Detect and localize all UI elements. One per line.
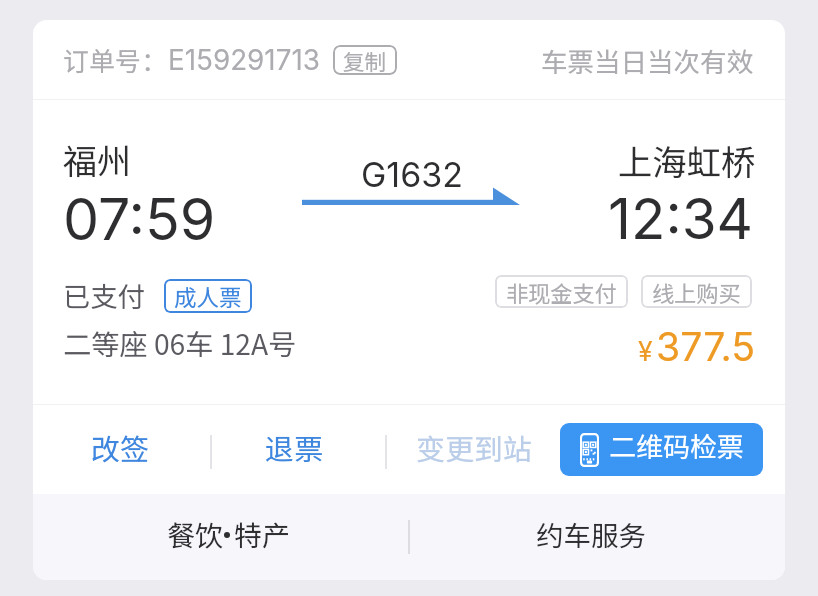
staticText: 改签 — [91, 426, 150, 468]
button[interactable]: 约车服务 — [410, 494, 785, 580]
button[interactable]: 线上购买 — [641, 275, 752, 308]
staticText: 特产 — [234, 514, 291, 555]
staticText: 变更到站 — [416, 426, 533, 468]
staticText: 非现金支付 — [506, 276, 617, 308]
staticText: 订单号： — [63, 41, 168, 79]
button[interactable]: 退票 — [251, 412, 338, 482]
staticText: 成人票 — [174, 280, 242, 313]
staticText: 约车服务 — [536, 514, 646, 554]
staticText: 餐饮 — [167, 514, 224, 555]
staticText: 377.5 — [656, 323, 755, 370]
button[interactable]: QR code ticket check — [560, 423, 763, 476]
staticText: 线上购买 — [652, 276, 741, 308]
button[interactable]: 非现金支付 — [495, 275, 628, 308]
staticText: 福州 — [63, 135, 131, 184]
staticText: E159291713 — [168, 43, 320, 77]
staticText: 二等座 06车 12A号 — [63, 322, 297, 363]
button[interactable]: 复制 — [333, 45, 397, 75]
staticText: 上海虹桥 — [618, 135, 756, 185]
staticText: 车票当日当次有效 — [541, 41, 753, 79]
staticText: 12:34 — [608, 184, 754, 252]
button[interactable]: 改签 — [77, 412, 164, 482]
staticText: 二维码检票 — [609, 426, 744, 465]
staticText: ¥ — [638, 335, 653, 367]
other: QR code ticket check — [580, 433, 599, 467]
staticText: 07:59 — [63, 184, 216, 253]
staticText: 复制 — [343, 45, 387, 75]
staticText: 已支付 — [63, 275, 145, 315]
button[interactable]: 变更到站 — [402, 412, 547, 482]
staticText: 退票 — [265, 426, 324, 468]
staticText: G1632 — [361, 154, 464, 195]
button[interactable]: 餐饮 — [33, 494, 408, 580]
button[interactable]: 成人票 — [164, 279, 252, 313]
